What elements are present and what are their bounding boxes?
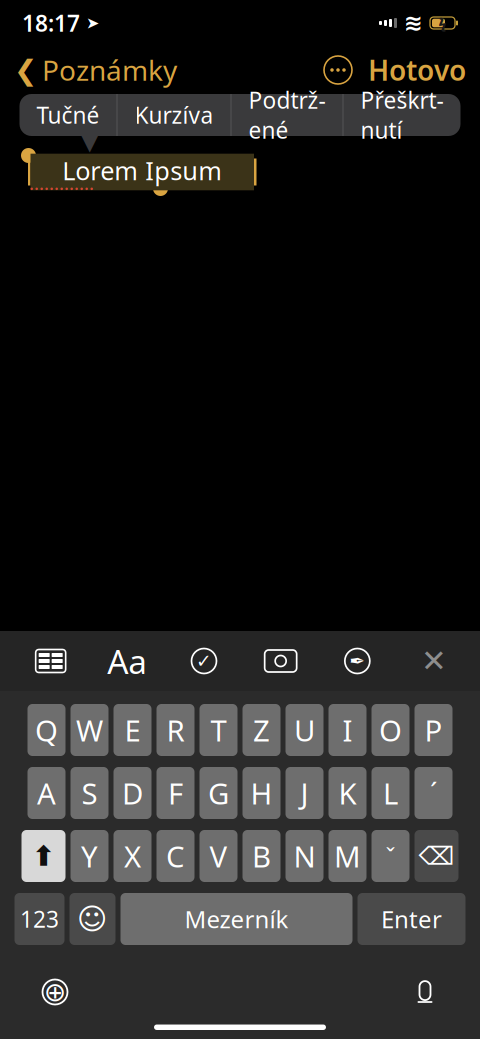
staticText: Přeškrtnutí [360,85,443,145]
button[interactable]: P [414,704,452,756]
button[interactable]: ´ [414,767,452,819]
staticText: G [208,773,229,812]
staticText: ✓ [196,650,212,672]
staticText: W [76,710,103,749]
button[interactable]: N [285,830,323,882]
button[interactable]: J [285,767,323,819]
staticText: 123 [20,904,59,934]
button[interactable]: A [27,767,65,819]
staticText: A [37,773,56,812]
button[interactable]: Camera [255,634,307,688]
staticText: ➤ [80,14,99,32]
staticText: ⊕ [44,977,66,1007]
button[interactable]: Mezerník [120,893,352,945]
button[interactable]: Podtržené [230,94,342,136]
staticText: Lorem Ipsum [62,154,222,187]
button[interactable]: Z [242,704,280,756]
staticText: M [334,836,361,875]
button[interactable]: E [113,704,151,756]
button[interactable]: T [199,704,237,756]
button[interactable]: 123 [14,893,64,945]
staticText: Z [253,710,270,749]
staticText: Tučné [36,100,99,130]
staticText: Poznámky [42,51,177,89]
staticText: I [342,710,352,749]
staticText: Y [81,836,98,875]
staticText: ⌫ [418,842,454,870]
staticText: ☺ [77,902,108,936]
staticText: D [122,773,143,812]
staticText: U [294,710,315,749]
button[interactable]: B [242,830,280,882]
staticText: S [81,773,97,812]
staticText: ≋ [404,10,423,36]
button[interactable]: Enter [357,893,465,945]
button[interactable]: H [242,767,280,819]
button[interactable]: Switch keyboard [28,967,82,1017]
staticText: ⬆ [32,840,55,872]
staticText: H [250,773,272,812]
staticText: Mezerník [184,903,288,935]
staticText: L [383,773,398,812]
staticText: J [300,773,308,812]
staticText: F [168,773,183,812]
button[interactable]: I [328,704,366,756]
button[interactable]: Přeškrtnutí [342,94,460,136]
button[interactable]: Q [27,704,65,756]
staticText: O [379,710,402,749]
button[interactable]: Dictation [398,967,452,1017]
button[interactable]: D [113,767,151,819]
staticText: ϟ [438,13,446,33]
staticText: R [166,710,184,749]
staticText: ✕ [421,644,447,678]
staticText: X [124,836,141,875]
staticText: Aa [107,639,147,683]
button[interactable]: X [113,830,151,882]
button[interactable]: Checklist [178,634,230,688]
button[interactable]: Y [70,830,108,882]
staticText: K [338,773,356,812]
button[interactable]: More options [318,50,358,90]
button[interactable]: O [371,704,409,756]
staticText: Hotovo [368,51,466,89]
staticText: ▼ [81,129,98,155]
button[interactable]: U [285,704,323,756]
button[interactable]: Close keyboard [408,634,460,688]
button[interactable]: S [70,767,108,819]
staticText: Kurzíva [134,100,213,130]
staticText: E [124,710,140,749]
button[interactable]: Table [25,634,77,688]
button[interactable]: Hotovo [358,45,466,95]
button[interactable]: Kurzíva [116,94,230,136]
staticText: T [210,710,226,749]
button[interactable]: F [156,767,194,819]
staticText: 18:17 [22,8,80,38]
staticText: V [209,836,227,875]
staticText: ˇ [385,840,395,872]
staticText: N [293,836,315,875]
button[interactable]: Delete [414,830,458,882]
staticText: ´ [430,775,437,811]
button[interactable]: Text formatting [101,634,153,688]
button[interactable]: Shift [21,830,65,882]
staticText: ❮ [14,54,37,86]
button[interactable]: R [156,704,194,756]
button[interactable]: ❮ [14,45,177,95]
button[interactable]: Tučné [19,94,116,136]
button[interactable]: Emoji [69,893,115,945]
button[interactable]: G [199,767,237,819]
staticText: ✒ [349,650,365,672]
button[interactable]: K [328,767,366,819]
staticText: Enter [381,903,442,935]
button[interactable]: V [199,830,237,882]
button[interactable]: L [371,767,409,819]
staticText: Podtržené [248,85,325,145]
button[interactable]: ˇ [371,830,409,882]
button[interactable]: Markup [331,634,383,688]
staticText: C [166,836,185,875]
staticText: Q [35,710,58,749]
button[interactable]: C [156,830,194,882]
button[interactable]: M [328,830,366,882]
button[interactable]: W [70,704,108,756]
staticText: P [424,710,442,749]
